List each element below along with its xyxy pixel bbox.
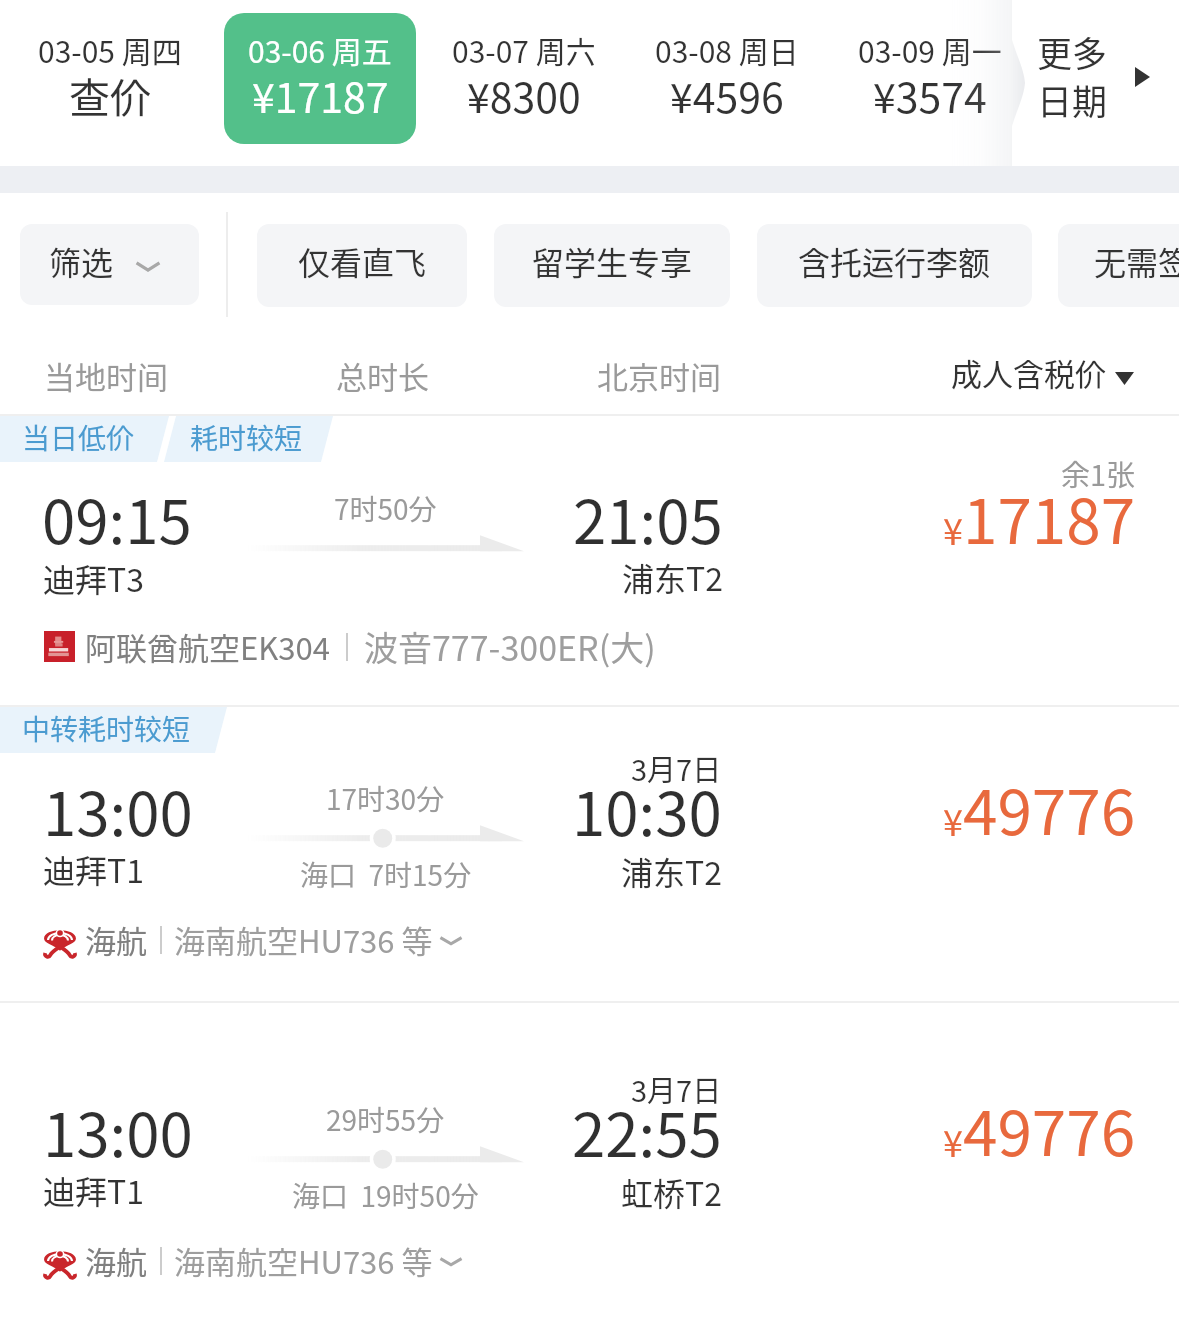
- staticText: 耗时较短: [190, 417, 303, 458]
- staticText: ¥8300: [467, 65, 581, 124]
- staticText: 迪拜T1: [43, 846, 144, 892]
- button[interactable]: 03-06 周五: [224, 13, 416, 144]
- staticText: ¥3574: [873, 65, 987, 124]
- button[interactable]: 仅看直飞: [257, 224, 467, 307]
- staticText: 03-09 周一: [858, 28, 1002, 71]
- staticText: 迪拜T3: [43, 555, 144, 601]
- staticText: 余1张: [1061, 452, 1136, 494]
- staticText: 波音777-300ER(大): [364, 622, 656, 671]
- staticText: 海航: [85, 917, 147, 962]
- staticText: 中转耗时较短: [22, 708, 191, 749]
- staticText: 海口 19时50分: [292, 1175, 479, 1216]
- staticText: 海航: [85, 1238, 147, 1283]
- staticText: 21:05: [573, 474, 723, 561]
- button[interactable]: 当日低价: [0, 416, 1179, 707]
- staticText: 29时55分: [326, 1099, 445, 1140]
- staticText: 03-07 周六: [452, 28, 596, 71]
- staticText: 09:15: [42, 474, 192, 561]
- staticText: 海南航空HU736 等: [174, 917, 433, 962]
- staticText: 浦东T2: [622, 554, 723, 600]
- staticText: 日期: [1037, 74, 1108, 125]
- staticText: ¥17187: [252, 65, 389, 124]
- staticText: ¥4596: [670, 65, 784, 124]
- staticText: 总时长: [336, 353, 429, 398]
- staticText: 阿联酋航空EK304: [85, 624, 330, 669]
- staticText: 留学生专享: [532, 238, 693, 284]
- button[interactable]: 无需签证: [1058, 224, 1179, 307]
- staticText: 当日低价: [22, 417, 135, 458]
- staticText: 3月7日: [631, 1068, 722, 1110]
- staticText: 北京时间: [597, 353, 721, 398]
- staticText: 17时30分: [326, 778, 445, 819]
- staticText: 迪拜T1: [43, 1167, 144, 1213]
- staticText: 03-08 周日: [655, 28, 799, 71]
- staticText: 22:55: [572, 1087, 722, 1174]
- button[interactable]: 成人含税价: [951, 350, 1131, 395]
- staticText: 49776: [963, 1084, 1136, 1174]
- staticText: 含托运行李额: [798, 238, 991, 284]
- button[interactable]: 含托运行李额: [757, 224, 1032, 307]
- staticText: 仅看直飞: [298, 238, 427, 284]
- button[interactable]: 留学生专享: [494, 224, 730, 307]
- button[interactable]: 03-09 周一: [834, 13, 1026, 144]
- staticText: 当地时间: [44, 353, 168, 398]
- staticText: 7时50分: [334, 488, 437, 529]
- staticText: 海南航空HU736 等: [174, 1238, 433, 1283]
- staticText: 10:30: [572, 766, 722, 853]
- staticText: ¥: [943, 794, 963, 846]
- staticText: ¥: [943, 503, 963, 555]
- button[interactable]: 13:00: [0, 1003, 1179, 1336]
- button[interactable]: 更多: [1030, 0, 1179, 166]
- staticText: 查价: [69, 65, 151, 124]
- button[interactable]: 03-05 周四: [14, 13, 206, 144]
- staticText: 成人含税价: [951, 350, 1106, 395]
- staticText: 3月7日: [631, 747, 722, 789]
- button[interactable]: 03-08 周日: [631, 13, 823, 144]
- staticText: 海口 7时15分: [300, 854, 472, 895]
- staticText: 浦东T2: [621, 848, 722, 894]
- staticText: 13:00: [43, 1087, 193, 1174]
- staticText: 03-06 周五: [248, 28, 392, 71]
- button[interactable]: 中转耗时较短: [0, 707, 1179, 1003]
- staticText: 13:00: [43, 766, 193, 853]
- staticText: 17187: [963, 472, 1136, 562]
- staticText: 虹桥T2: [621, 1169, 722, 1215]
- staticText: ¥: [943, 1115, 963, 1167]
- staticText: 49776: [963, 763, 1136, 853]
- button[interactable]: 筛选: [20, 224, 199, 305]
- staticText: 筛选: [49, 238, 114, 284]
- button[interactable]: 03-07 周六: [428, 13, 620, 144]
- staticText: 03-05 周四: [38, 28, 182, 71]
- staticText: 无需签证: [1094, 238, 1179, 284]
- staticText: 更多: [1037, 26, 1108, 77]
- other: 更多日期: [1135, 67, 1150, 87]
